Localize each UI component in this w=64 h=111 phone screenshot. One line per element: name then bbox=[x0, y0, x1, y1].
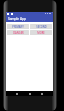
button[interactable]: Home bbox=[28, 92, 32, 96]
staticText: SECOND bbox=[36, 25, 47, 29]
staticText: MORE bbox=[37, 31, 45, 35]
button[interactable]: Recents bbox=[40, 92, 44, 96]
staticText: DANGER bbox=[13, 31, 24, 35]
staticText: Sample App bbox=[8, 17, 26, 21]
button[interactable]: MORE bbox=[30, 30, 52, 35]
button[interactable]: SECOND bbox=[30, 24, 52, 29]
button[interactable]: DANGER bbox=[7, 30, 29, 35]
button[interactable]: Back bbox=[15, 92, 19, 96]
staticText: PRIMARY bbox=[12, 25, 24, 29]
button[interactable]: PRIMARY bbox=[7, 24, 29, 29]
